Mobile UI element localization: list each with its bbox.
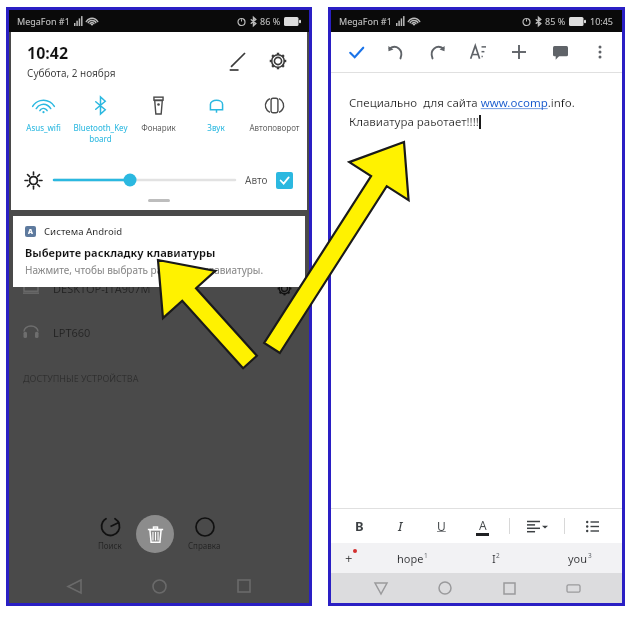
button[interactable]: Edit xyxy=(221,46,251,76)
staticText: Bluetooth_Key board xyxy=(73,122,128,144)
staticText: Выберите раскладку клавиатуры xyxy=(25,245,216,260)
button[interactable]: Keyboard xyxy=(558,573,588,603)
button[interactable]: Поиск xyxy=(94,512,126,555)
button[interactable]: Recents xyxy=(494,573,524,603)
staticText: Специально для сайта www.ocomp.info. xyxy=(349,95,575,111)
button[interactable]: Insert xyxy=(504,37,534,67)
staticText: Суббота, 2 ноября xyxy=(27,66,116,80)
button[interactable]: Done xyxy=(341,37,371,67)
button[interactable]: Bold xyxy=(345,511,373,541)
button[interactable]: Звук xyxy=(187,94,245,135)
button[interactable]: Bluetooth_Key board xyxy=(72,94,129,146)
button[interactable]: Home xyxy=(430,573,460,603)
button[interactable]: Автоповорот xyxy=(245,94,303,135)
button[interactable]: List xyxy=(578,511,606,541)
staticText: you xyxy=(568,551,588,566)
staticText: Авто xyxy=(245,173,268,187)
button[interactable]: Auto brightness xyxy=(276,172,293,189)
button[interactable]: Undo xyxy=(381,37,411,67)
button[interactable]: Underline xyxy=(427,511,455,541)
staticText: MegaFon #1 xyxy=(339,15,392,27)
staticText: Asus_wifi xyxy=(26,122,61,133)
staticText: Звук xyxy=(207,122,225,133)
button[interactable]: Bluetooth_Keyboard xyxy=(9,222,309,266)
button[interactable]: Brightness xyxy=(54,171,235,189)
button[interactable]: A xyxy=(13,216,305,287)
button[interactable]: Delete xyxy=(136,515,174,553)
staticText: B xyxy=(355,517,364,535)
button[interactable]: Справка xyxy=(184,513,225,555)
staticText: + xyxy=(345,549,353,567)
button[interactable]: DESKTOP-I1A907M xyxy=(9,266,309,310)
button[interactable]: Comment xyxy=(545,37,575,67)
button[interactable]: you xyxy=(538,543,622,573)
staticText: Bluetooth_Keyboard xyxy=(53,231,159,246)
staticText: Подключено xyxy=(53,246,106,258)
button[interactable]: Format xyxy=(463,37,493,67)
staticText: MegaFon #1 xyxy=(17,15,70,27)
staticText: I xyxy=(398,517,403,535)
staticText: Фонарик xyxy=(141,122,176,133)
staticText: ДОСТУПНЫЕ УСТРОЙСТВА xyxy=(23,372,139,384)
button[interactable]: Фонарик xyxy=(129,94,187,135)
staticText: 10:45 xyxy=(590,15,614,27)
button[interactable]: Back xyxy=(54,569,94,603)
button[interactable]: LPT660 xyxy=(9,310,309,354)
button[interactable]: Device settings xyxy=(273,321,295,343)
staticText: LPT660 xyxy=(53,325,91,340)
staticText: A xyxy=(479,517,487,533)
staticText: DESKTOP-I1A907M xyxy=(53,281,151,296)
staticText: Автоповорот xyxy=(249,122,300,133)
button[interactable]: Italic xyxy=(386,511,414,541)
staticText: hope xyxy=(397,551,424,566)
staticText: U xyxy=(437,518,446,534)
staticText: 3 xyxy=(588,551,592,560)
button[interactable]: hope xyxy=(371,543,454,573)
button[interactable]: Home xyxy=(139,569,179,603)
button[interactable]: Settings xyxy=(263,46,293,76)
staticText: 2 xyxy=(496,551,500,560)
staticText: Поиск xyxy=(98,540,122,551)
staticText: 86 % xyxy=(260,15,281,27)
staticText: I xyxy=(492,551,496,566)
button[interactable]: Device settings xyxy=(273,277,295,299)
button[interactable]: Redo xyxy=(422,37,452,67)
button[interactable]: More options xyxy=(586,38,614,66)
button[interactable]: Recents xyxy=(224,569,264,603)
staticText: Справка xyxy=(188,540,221,551)
button[interactable]: I xyxy=(454,543,538,573)
button[interactable]: Alignment xyxy=(523,511,551,541)
staticText: 10:42 xyxy=(27,42,69,64)
button[interactable]: Add xyxy=(331,543,371,573)
staticText: 85 % xyxy=(545,15,566,27)
staticText: Клавиатура раьотает!!!! xyxy=(349,114,479,130)
staticText: A xyxy=(28,227,33,237)
button[interactable]: Asus_wifi xyxy=(15,94,72,135)
button[interactable]: Text color xyxy=(468,511,496,541)
staticText: Нажмите, чтобы выбрать раскладку клавиат… xyxy=(25,263,264,277)
staticText: Система Android xyxy=(44,225,123,238)
staticText: 1 xyxy=(424,551,428,560)
button[interactable]: Back xyxy=(366,573,396,603)
